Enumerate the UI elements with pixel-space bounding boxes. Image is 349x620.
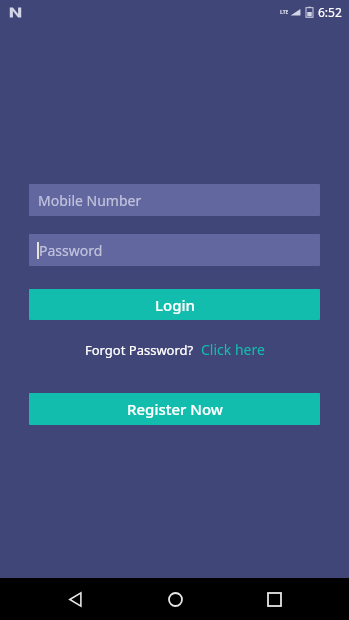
staticText: Forgot Password?: [85, 341, 194, 359]
button[interactable]: Home: [151, 578, 199, 620]
button[interactable]: Login: [29, 289, 320, 320]
button[interactable]: Password: [29, 234, 320, 266]
button[interactable]: Mobile Number: [29, 184, 320, 216]
staticText: Mobile Number: [38, 191, 142, 210]
staticText: Login: [155, 295, 195, 315]
staticText: LTE: [280, 9, 289, 16]
staticText: 6:52: [318, 4, 342, 20]
button[interactable]: Back: [51, 578, 99, 620]
button[interactable]: Recent apps: [250, 578, 298, 620]
staticText: Password: [39, 241, 103, 260]
staticText: Register Now: [127, 399, 223, 419]
button[interactable]: Register Now: [29, 393, 320, 425]
button[interactable]: Click here: [201, 340, 265, 359]
staticText: Click here: [201, 340, 265, 359]
